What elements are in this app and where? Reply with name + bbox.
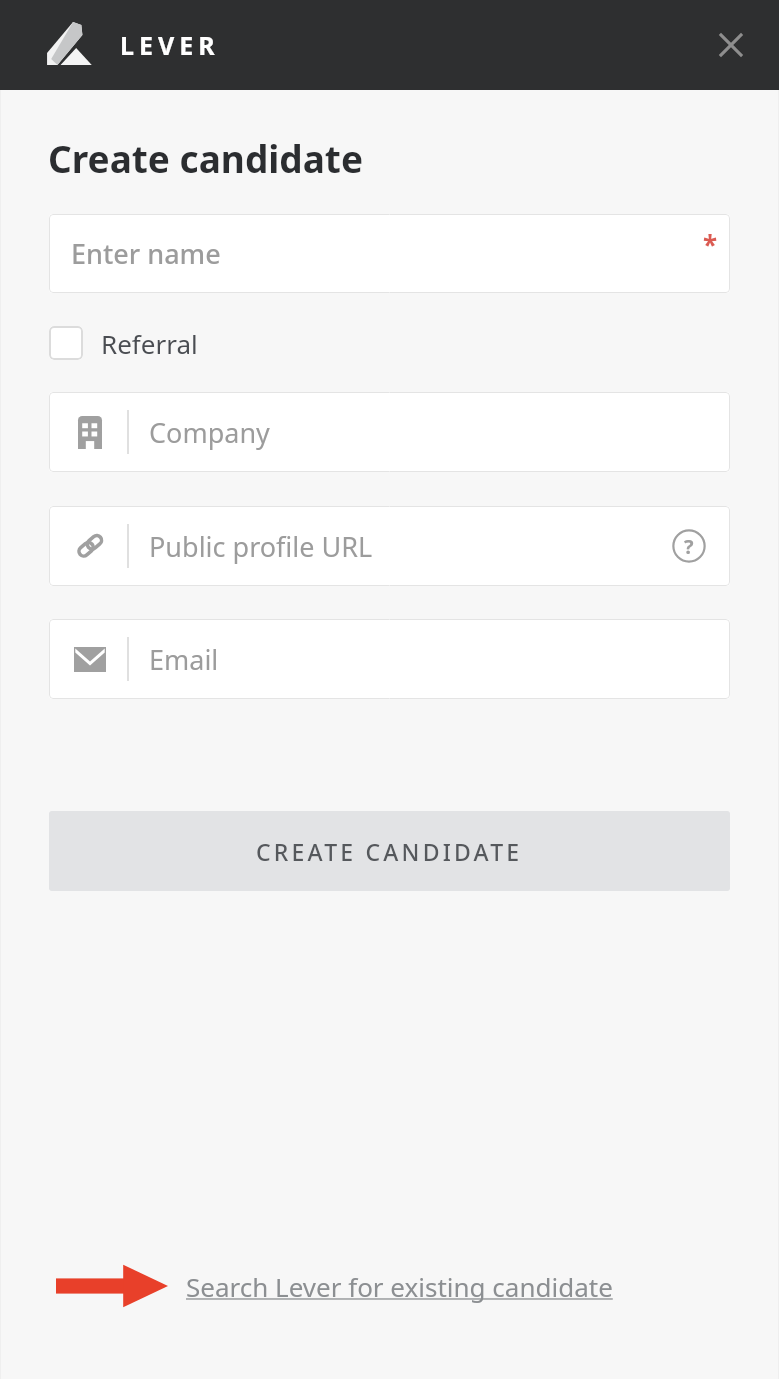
other: Arrow pointing to link (56, 1263, 168, 1309)
staticText: * (703, 227, 718, 262)
staticText: Create candidate (48, 133, 364, 183)
staticText: CREATE CANDIDATE (256, 836, 523, 867)
button[interactable]: Close (705, 19, 757, 71)
staticText: LEVER (120, 28, 220, 62)
button[interactable]: Public profile URL (49, 506, 730, 586)
staticText: ? (684, 533, 694, 560)
staticText: Referral (101, 326, 198, 361)
button[interactable]: Help (670, 527, 708, 565)
staticText: Enter name (71, 235, 221, 272)
button[interactable]: Referral (49, 321, 198, 365)
staticText: Public profile URL (149, 528, 373, 565)
button[interactable]: Email (49, 619, 730, 699)
button[interactable]: Search Lever for existing candidate (186, 1269, 613, 1304)
button[interactable]: CREATE CANDIDATE (49, 811, 730, 891)
staticText: Email (149, 641, 219, 678)
button[interactable]: Enter name (49, 214, 730, 293)
button[interactable]: Company (49, 392, 730, 472)
staticText: Company (149, 414, 270, 451)
staticText: Search Lever for existing candidate (186, 1269, 613, 1304)
